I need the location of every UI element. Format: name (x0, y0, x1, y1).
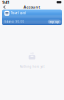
staticText: Balance $0.00 (4, 20, 24, 23)
staticText: Travel card (11, 11, 26, 15)
staticText: Top up (49, 20, 59, 23)
button[interactable]: Back (2, 4, 7, 10)
staticText: Nothing here yet (19, 65, 44, 68)
staticText: 9:41 (2, 0, 9, 5)
staticText: Account (23, 4, 40, 10)
button[interactable]: Top up (48, 20, 61, 24)
